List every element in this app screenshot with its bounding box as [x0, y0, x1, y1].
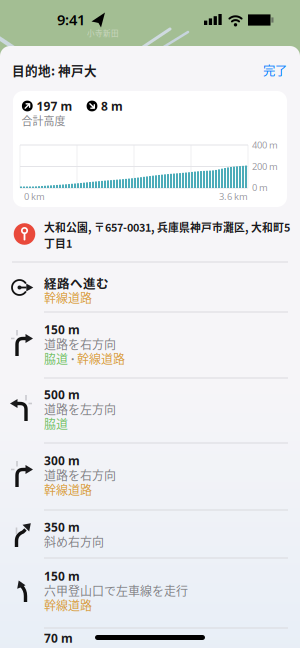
- staticText: 300 m: [44, 452, 80, 468]
- staticText: ·: [71, 350, 74, 366]
- staticText: 8 m: [101, 98, 123, 114]
- button[interactable]: 大和公園, 〒657-0031, 兵庫県神戸市灘区, 大和町5: [0, 206, 300, 262]
- staticText: 70 m: [44, 630, 73, 646]
- staticText: 350 m: [44, 519, 80, 535]
- button[interactable]: 150 m: [0, 557, 300, 627]
- staticText: 道路を左方向: [44, 400, 116, 418]
- staticText: 150 m: [44, 321, 80, 337]
- staticText: 0 m: [252, 181, 268, 194]
- staticText: 150 m: [44, 568, 80, 584]
- staticText: 道路を右方向: [44, 335, 116, 353]
- staticText: 丁目1: [44, 235, 72, 251]
- staticText: 道路を右方向: [44, 466, 116, 484]
- staticText: 完了: [263, 61, 287, 79]
- staticText: 斜め右方向: [44, 533, 104, 550]
- button[interactable]: 70 m: [0, 614, 300, 648]
- staticText: 200 m: [252, 160, 278, 173]
- button[interactable]: 経路へ進む: [0, 263, 300, 311]
- staticText: 9:41: [57, 10, 85, 29]
- staticText: 大和公園, 〒657-0031, 兵庫県神戸市灘区, 大和町5: [44, 219, 290, 235]
- button[interactable]: 350 m: [0, 511, 300, 557]
- staticText: 400 m: [252, 139, 278, 151]
- staticText: 197 m: [36, 98, 72, 114]
- staticText: 経路へ進む: [44, 274, 109, 292]
- button[interactable]: 500 m: [0, 378, 300, 442]
- button[interactable]: 150 m: [0, 313, 300, 377]
- staticText: 幹線道路: [77, 350, 125, 367]
- staticText: 脇道: [44, 350, 68, 367]
- staticText: 六甲登山口で左車線を走行: [44, 582, 188, 599]
- staticText: 幹線道路: [44, 596, 92, 614]
- staticText: 目的地: 神戸大: [12, 61, 97, 79]
- staticText: 3.6 km: [219, 190, 248, 203]
- staticText: 小寺新田: [87, 28, 119, 38]
- staticText: 幹線道路: [44, 481, 92, 498]
- staticText: 幹線道路: [44, 289, 92, 306]
- staticText: 0 km: [24, 190, 45, 203]
- button[interactable]: 完了: [263, 61, 287, 79]
- staticText: 500 m: [44, 386, 80, 402]
- staticText: 脇道: [44, 415, 68, 432]
- staticText: 合計高度: [21, 112, 65, 128]
- button[interactable]: 300 m: [0, 444, 300, 508]
